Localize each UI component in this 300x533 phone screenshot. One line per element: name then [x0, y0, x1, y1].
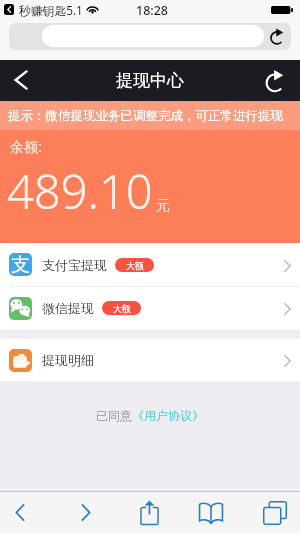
button[interactable]: Refresh: [265, 72, 285, 92]
staticText: 大额: [126, 260, 144, 271]
staticText: 提示：微信提现业务已调整完成，可正常进行提现: [8, 108, 283, 124]
staticText: 提现中心: [116, 70, 184, 91]
button[interactable]: 提现明细: [0, 339, 300, 381]
button[interactable]: Back to app: [4, 4, 14, 15]
staticText: 元: [156, 197, 170, 215]
button[interactable]: Forward: [64, 492, 108, 533]
staticText: 大额: [113, 303, 131, 314]
staticText: 余额:: [10, 137, 42, 156]
button[interactable]: 微信提现: [0, 287, 300, 329]
button[interactable]: 已同意《用户协议》: [96, 408, 204, 423]
staticText: 秒赚钥匙5.1: [19, 2, 83, 18]
button[interactable]: Tabs: [250, 492, 300, 533]
staticText: 支付宝提现: [42, 257, 107, 273]
button[interactable]: Share: [126, 492, 172, 533]
staticText: 微信提现: [42, 300, 94, 316]
button[interactable]: Address: [42, 25, 264, 47]
staticText: 提现明细: [42, 352, 94, 368]
staticText: 支: [11, 253, 30, 276]
button[interactable]: Reload: [267, 27, 287, 47]
button[interactable]: 支: [0, 243, 300, 286]
button[interactable]: Bookmarks: [188, 492, 234, 533]
button[interactable]: Back: [0, 492, 40, 533]
staticText: 489.10: [7, 159, 153, 223]
staticText: 18:28: [136, 2, 169, 19]
button[interactable]: Back: [11, 70, 31, 90]
